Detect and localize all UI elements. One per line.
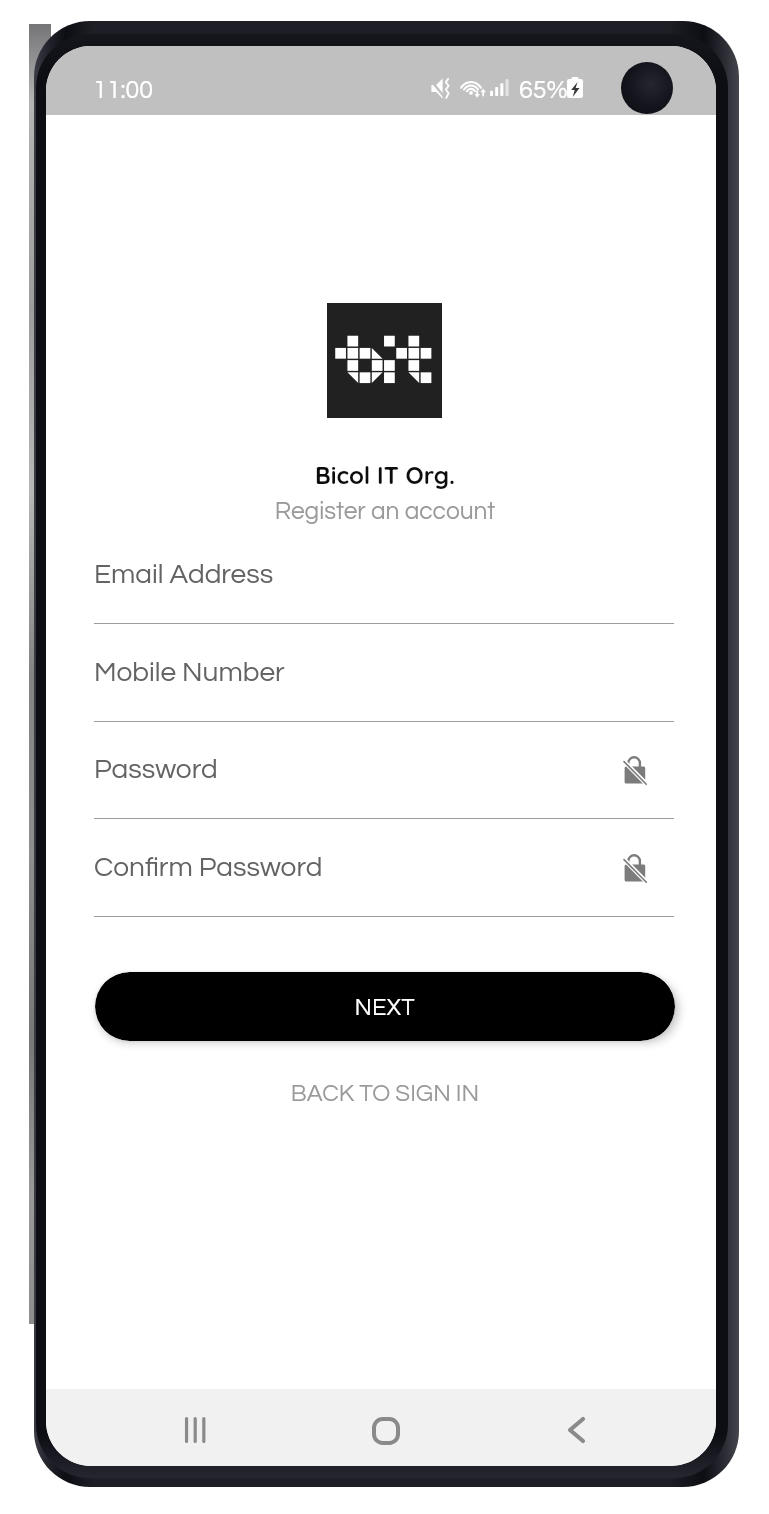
staticText: Mobile Number [94, 658, 285, 687]
button[interactable]: Recent apps [170, 1404, 222, 1456]
button[interactable] [270, 1076, 500, 1112]
button[interactable]: Show password [612, 747, 662, 793]
staticText: Password [94, 755, 218, 784]
staticText: 65% [519, 77, 568, 103]
staticText: Register an account [85, 499, 685, 524]
staticText: 11:00 [93, 77, 154, 103]
button[interactable] [95, 972, 675, 1041]
button[interactable]: Home [360, 1405, 412, 1457]
staticText: Bicol IT Org. [85, 460, 685, 490]
staticText: BACK TO SIGN IN [85, 1081, 685, 1106]
button[interactable]: Back [550, 1404, 602, 1456]
button[interactable]: Show password [612, 845, 662, 891]
staticText: Email Address [94, 560, 274, 589]
staticText: Confirm Password [94, 853, 323, 882]
staticText: NEXT [85, 996, 685, 1020]
